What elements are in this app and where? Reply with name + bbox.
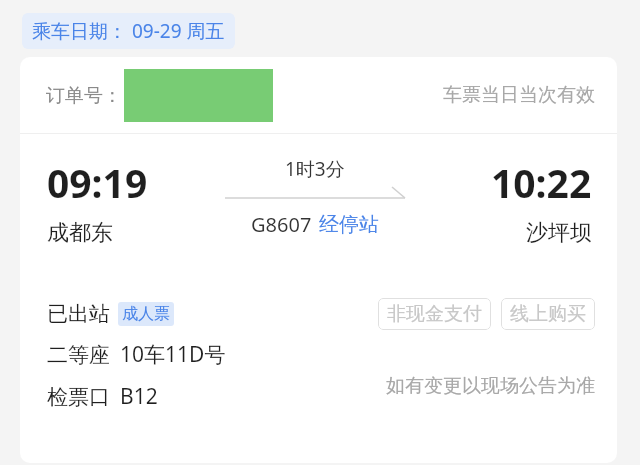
button[interactable]: 经停站 bbox=[319, 212, 379, 237]
staticText: 检票口 bbox=[47, 384, 110, 410]
staticText: 已出站 bbox=[47, 301, 110, 327]
staticText: 经停站 bbox=[319, 212, 379, 237]
button[interactable]: 乘车日期： 09-29 周五 bbox=[22, 13, 235, 49]
staticText: 二等座 bbox=[47, 342, 110, 368]
staticText: 乘车日期： 09-29 周五 bbox=[32, 18, 225, 44]
button[interactable]: 线上购买 bbox=[501, 298, 595, 330]
staticText: 1时3分 bbox=[285, 156, 345, 182]
staticText: 成人票 bbox=[122, 304, 170, 324]
staticText: 订单号： bbox=[46, 84, 122, 108]
staticText: 沙坪坝 bbox=[526, 219, 592, 247]
staticText: 10:22 bbox=[491, 156, 592, 209]
staticText: 如有变更以现场公告为准 bbox=[386, 374, 595, 398]
staticText: 10车11D号 bbox=[120, 340, 226, 369]
staticText: 线上购买 bbox=[510, 302, 586, 326]
staticText: G8607 bbox=[251, 211, 312, 238]
staticText: B12 bbox=[120, 382, 158, 411]
staticText: 非现金支付 bbox=[387, 302, 482, 326]
staticText: 成都东 bbox=[47, 219, 113, 247]
staticText: 09:19 bbox=[47, 156, 148, 209]
staticText: 车票当日当次有效 bbox=[443, 83, 595, 107]
button[interactable]: 非现金支付 bbox=[378, 298, 491, 330]
